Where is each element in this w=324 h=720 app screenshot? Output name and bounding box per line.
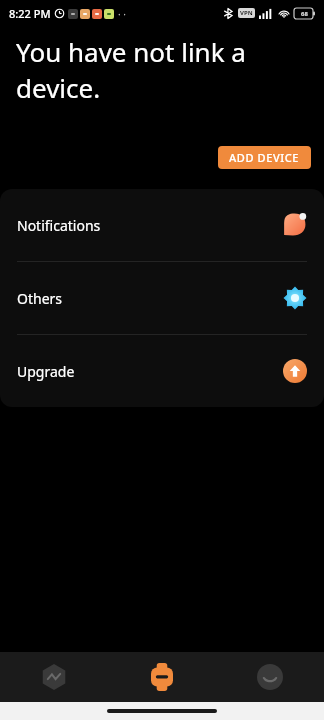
- button[interactable]: Others: [0, 262, 324, 334]
- button[interactable]: ADD DEVICE: [218, 146, 311, 169]
- staticText: · ·: [118, 7, 126, 21]
- button[interactable]: Device: [108, 652, 216, 702]
- button[interactable]: Profile: [216, 652, 324, 702]
- button[interactable]: Activity: [0, 652, 108, 702]
- staticText: You have not link a device.: [16, 34, 300, 106]
- staticText: Notifications: [17, 216, 101, 235]
- button[interactable]: Upgrade: [0, 335, 324, 407]
- staticText: 8:22 PM: [9, 6, 51, 21]
- staticText: Others: [17, 289, 63, 308]
- staticText: Upgrade: [17, 362, 75, 381]
- staticText: ADD DEVICE: [229, 150, 300, 165]
- staticText: VPN: [240, 9, 253, 17]
- button[interactable]: Notifications: [0, 189, 324, 261]
- staticText: 68: [301, 10, 308, 18]
